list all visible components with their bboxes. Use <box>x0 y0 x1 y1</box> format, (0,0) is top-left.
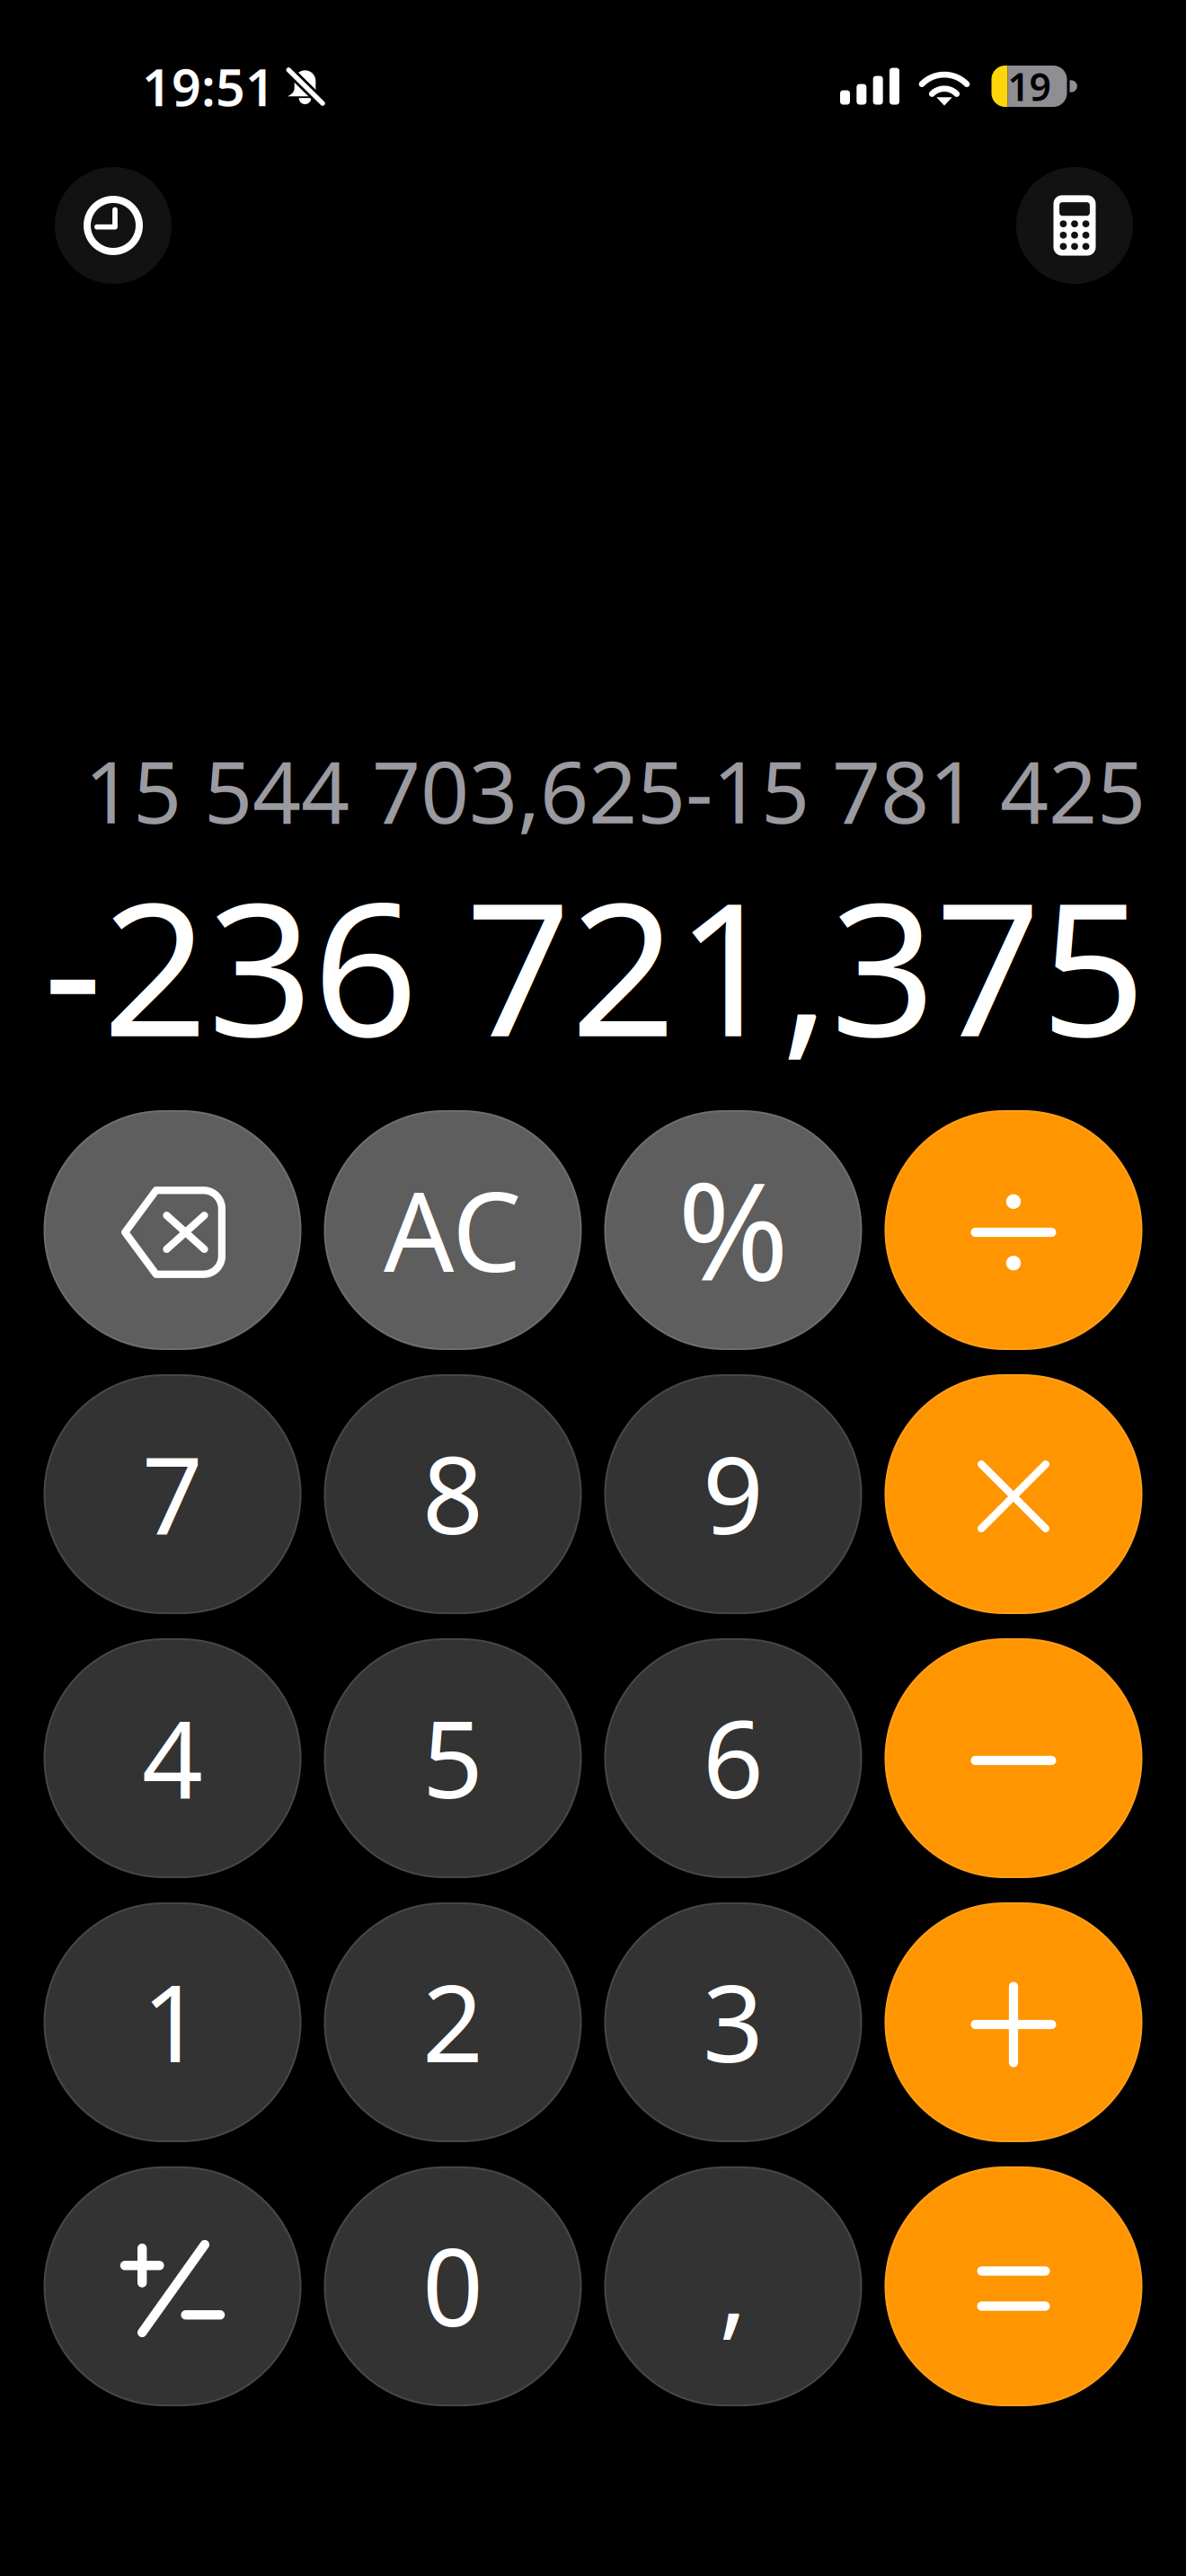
staticText: 15 544 703,625-15 781 425 <box>84 734 1146 847</box>
button[interactable]: Divide <box>885 1110 1142 1350</box>
button[interactable] <box>604 1374 862 1614</box>
staticText: 3 <box>703 1950 764 2092</box>
button[interactable]: Add <box>885 1902 1142 2142</box>
staticText: 2 <box>422 1950 483 2092</box>
button[interactable] <box>44 1902 301 2142</box>
button[interactable]: Delete <box>44 1110 301 1350</box>
button[interactable] <box>44 1638 301 1878</box>
button[interactable]: Equals <box>885 2166 1142 2406</box>
button[interactable] <box>604 1110 862 1350</box>
staticText: % <box>677 1140 789 1318</box>
staticText: 6 <box>703 1686 764 1828</box>
button[interactable] <box>604 1638 862 1878</box>
button[interactable] <box>324 1374 582 1614</box>
button[interactable]: History <box>55 167 172 284</box>
staticText: AC <box>384 1156 522 1302</box>
staticText: 9 <box>703 1422 764 1564</box>
button[interactable]: Multiply <box>885 1374 1142 1614</box>
button[interactable] <box>324 2166 582 2406</box>
staticText: 1 <box>142 1950 203 2092</box>
button[interactable] <box>324 1902 582 2142</box>
button[interactable] <box>324 1110 582 1350</box>
staticText: -236 721,375 <box>43 842 1146 1087</box>
staticText: 19 <box>1008 61 1051 112</box>
staticText: 7 <box>142 1422 203 1564</box>
button[interactable] <box>324 1638 582 1878</box>
button[interactable]: Calculator mode <box>1016 167 1133 284</box>
staticText: 19:51 <box>142 52 275 120</box>
button[interactable]: Subtract <box>885 1638 1142 1878</box>
staticText: 0 <box>422 2214 483 2356</box>
button[interactable]: Plus minus <box>44 2166 301 2406</box>
staticText: 5 <box>422 1686 483 1828</box>
button[interactable] <box>604 1902 862 2142</box>
staticText: , <box>719 2214 748 2356</box>
staticText: 4 <box>142 1686 203 1828</box>
button[interactable] <box>44 1374 301 1614</box>
button[interactable] <box>604 2166 862 2406</box>
staticText: 8 <box>422 1422 483 1564</box>
